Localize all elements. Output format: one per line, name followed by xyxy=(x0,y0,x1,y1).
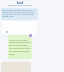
button[interactable]: Send the message you want to send to the… xyxy=(1,8,38,20)
button[interactable] xyxy=(2,21,37,34)
staticText: Send xyxy=(4,1,36,5)
staticText: Quick Response Setup xyxy=(4,4,36,7)
staticText: Send the message you want to send to the… xyxy=(2,9,37,17)
button[interactable]: Hi there. This is a demo message that sp… xyxy=(8,35,32,59)
staticText: Hi there. This is a demo message that sp… xyxy=(9,39,31,56)
